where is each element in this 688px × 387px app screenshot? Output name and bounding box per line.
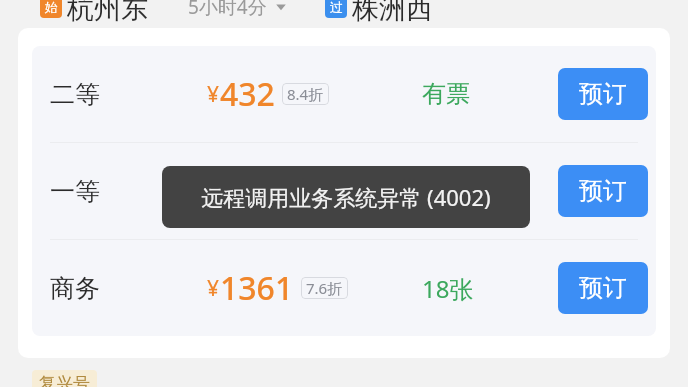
staticText: 预订 <box>579 176 627 206</box>
button[interactable]: 商务 <box>32 240 656 336</box>
button[interactable]: 二等 <box>32 46 656 142</box>
staticText: 二等 <box>50 79 100 110</box>
button[interactable]: 一等 <box>32 143 656 239</box>
button[interactable]: 预订 <box>558 165 648 217</box>
staticText: ¥ <box>207 80 220 109</box>
staticText: ¥ <box>207 274 220 303</box>
staticText: 预订 <box>579 79 627 109</box>
staticText: 5小时4分 <box>188 0 267 20</box>
staticText: 杭州东 <box>67 0 148 22</box>
staticText: 一等 <box>50 176 100 207</box>
staticText: 预订 <box>579 273 627 303</box>
staticText: 复兴号 <box>39 373 90 387</box>
button[interactable]: 展开 <box>273 0 289 15</box>
staticText: 8.4折 <box>287 84 324 104</box>
staticText: 远程调用业务系统异常 (4002) <box>201 182 491 212</box>
button[interactable]: 预订 <box>558 262 648 314</box>
staticText: 7.6折 <box>306 278 343 298</box>
button[interactable]: 预订 <box>558 68 648 120</box>
staticText: 432 <box>220 72 275 116</box>
staticText: 18张 <box>422 272 474 305</box>
staticText: 1361 <box>220 266 294 310</box>
staticText: 有票 <box>422 79 470 109</box>
staticText: 株洲西 <box>352 0 433 22</box>
staticText: 始 <box>45 0 58 15</box>
staticText: 过 <box>330 0 343 15</box>
staticText: 商务 <box>50 273 100 304</box>
